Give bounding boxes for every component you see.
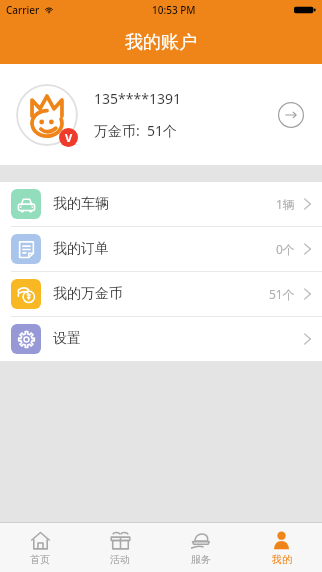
button[interactable]: 首页 <box>0 523 80 572</box>
staticText: 1辆 <box>276 196 295 212</box>
button[interactable]: 查看详情 <box>274 98 308 132</box>
button[interactable]: 我的 <box>241 523 322 572</box>
staticText: 我的 <box>272 553 292 566</box>
button[interactable]: 我的订单 <box>0 227 322 271</box>
staticText: 0个 <box>276 241 295 257</box>
staticText: 我的账户 <box>125 31 197 54</box>
button[interactable]: 服务 <box>160 523 241 572</box>
staticText: 首页 <box>30 553 50 566</box>
staticText: 我的订单 <box>53 240 276 258</box>
staticText: 51个 <box>269 286 295 302</box>
staticText: 设置 <box>53 330 304 348</box>
button[interactable]: 活动 <box>80 523 160 572</box>
button[interactable]: 设置 <box>0 317 322 361</box>
button[interactable]: 我的万金币 <box>0 272 322 316</box>
staticText: 我的万金币 <box>53 285 269 303</box>
staticText: 我的车辆 <box>53 195 276 213</box>
staticText: Carrier <box>6 3 40 17</box>
staticText: 135****1391 <box>94 89 181 108</box>
staticText: 10:53 PM <box>152 3 196 17</box>
button[interactable]: V <box>0 64 322 165</box>
staticText: 服务 <box>191 553 211 566</box>
staticText: 活动 <box>110 553 130 566</box>
staticText: 万金币: 51个 <box>94 121 178 140</box>
button[interactable]: 我的车辆 <box>0 182 322 226</box>
staticText: V <box>65 130 73 145</box>
